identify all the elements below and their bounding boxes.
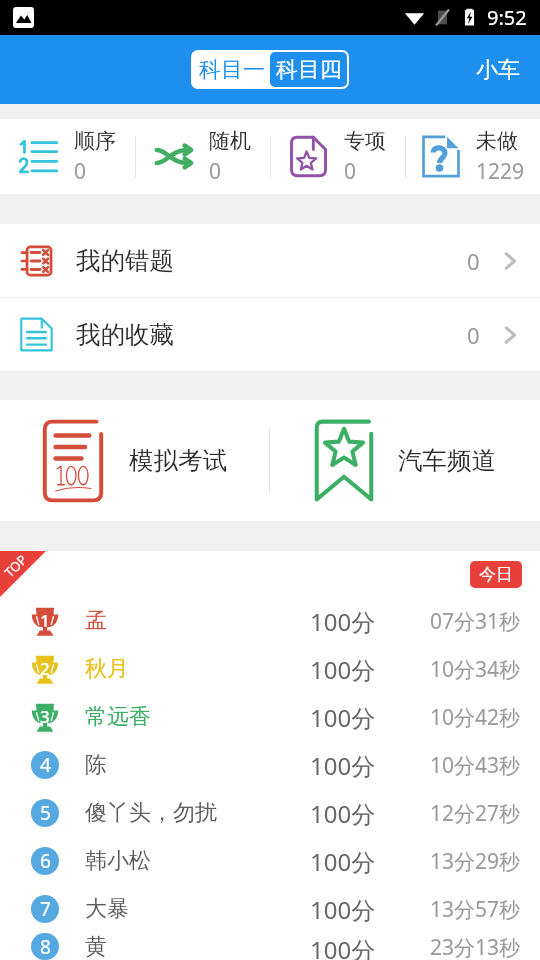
button[interactable]: 模拟考试 bbox=[0, 400, 269, 521]
staticText: 13分29秒 bbox=[428, 847, 520, 876]
staticText: 1229 bbox=[476, 157, 525, 186]
staticText: 100分 bbox=[310, 653, 376, 686]
staticText: 随机 bbox=[209, 128, 251, 154]
button[interactable]: 专项 bbox=[271, 119, 405, 194]
staticText: 0 bbox=[74, 157, 87, 186]
staticText: 100分 bbox=[310, 701, 376, 734]
staticText: 4 bbox=[40, 752, 51, 778]
staticText: 100分 bbox=[310, 797, 376, 830]
staticText: 1 bbox=[40, 609, 50, 632]
staticText: 我的错题 bbox=[76, 245, 174, 276]
staticText: 0 bbox=[344, 157, 357, 186]
button[interactable]: 我的错题 bbox=[0, 224, 540, 297]
button[interactable]: 4 bbox=[0, 741, 540, 789]
staticText: 大暴 bbox=[85, 895, 129, 923]
staticText: 秋月 bbox=[85, 655, 129, 683]
staticText: 孟 bbox=[85, 607, 107, 635]
staticText: 0 bbox=[467, 320, 480, 350]
staticText: 6 bbox=[40, 848, 51, 874]
staticText: 10分42秒 bbox=[428, 703, 520, 732]
staticText: 100分 bbox=[310, 749, 376, 782]
staticText: 0 bbox=[209, 157, 222, 186]
staticText: 2 bbox=[40, 657, 50, 680]
button[interactable]: 顺序 bbox=[0, 119, 135, 194]
staticText: 汽车频道 bbox=[398, 445, 496, 476]
staticText: 傻丫头，勿扰 bbox=[85, 799, 217, 827]
staticText: 未做 bbox=[476, 128, 518, 154]
staticText: 13分57秒 bbox=[428, 895, 520, 924]
staticText: 顺序 bbox=[74, 128, 116, 154]
button[interactable]: 科目四 bbox=[270, 52, 347, 87]
staticText: 10分34秒 bbox=[428, 655, 520, 684]
button[interactable]: 未做 bbox=[406, 119, 540, 194]
staticText: 韩小松 bbox=[85, 847, 151, 875]
staticText: 专项 bbox=[344, 128, 386, 154]
staticText: TOP bbox=[0, 551, 31, 581]
staticText: 我的收藏 bbox=[76, 319, 174, 350]
button[interactable]: 2 bbox=[0, 645, 540, 693]
staticText: 0 bbox=[467, 246, 480, 276]
staticText: 100分 bbox=[310, 845, 376, 878]
button[interactable]: 小车 bbox=[456, 44, 540, 96]
staticText: 10分43秒 bbox=[428, 751, 520, 780]
staticText: 12分27秒 bbox=[428, 799, 520, 828]
staticText: 100分 bbox=[310, 893, 376, 926]
staticText: 100分 bbox=[310, 605, 376, 638]
staticText: 8 bbox=[40, 934, 51, 960]
staticText: 黄 bbox=[85, 933, 107, 960]
staticText: 7 bbox=[40, 896, 51, 922]
staticText: 07分31秒 bbox=[428, 607, 520, 636]
button[interactable]: 7 bbox=[0, 885, 540, 933]
staticText: 5 bbox=[40, 800, 51, 826]
button[interactable]: 随机 bbox=[136, 119, 270, 194]
other: TOP bbox=[0, 551, 46, 597]
button[interactable]: 今日 bbox=[470, 561, 522, 588]
staticText: 9:52 bbox=[487, 4, 527, 31]
button[interactable]: 6 bbox=[0, 837, 540, 885]
staticText: 常远香 bbox=[85, 703, 151, 731]
staticText: 陈 bbox=[85, 751, 107, 779]
staticText: 23分13秒 bbox=[428, 933, 520, 960]
staticText: 3 bbox=[40, 705, 50, 728]
staticText: 100分 bbox=[310, 933, 376, 960]
button[interactable]: 8 bbox=[0, 933, 540, 960]
button[interactable]: 汽车频道 bbox=[270, 400, 540, 521]
button[interactable]: 科目一 bbox=[193, 52, 270, 87]
button[interactable]: 5 bbox=[0, 789, 540, 837]
staticText: 小车 bbox=[476, 56, 520, 84]
staticText: 今日 bbox=[479, 564, 513, 585]
button[interactable]: 我的收藏 bbox=[0, 298, 540, 371]
staticText: 模拟考试 bbox=[129, 445, 227, 476]
staticText: 科目一 bbox=[199, 56, 265, 84]
staticText: 科目四 bbox=[276, 56, 342, 84]
button[interactable]: 3 bbox=[0, 693, 540, 741]
button[interactable]: 1 bbox=[0, 597, 540, 645]
